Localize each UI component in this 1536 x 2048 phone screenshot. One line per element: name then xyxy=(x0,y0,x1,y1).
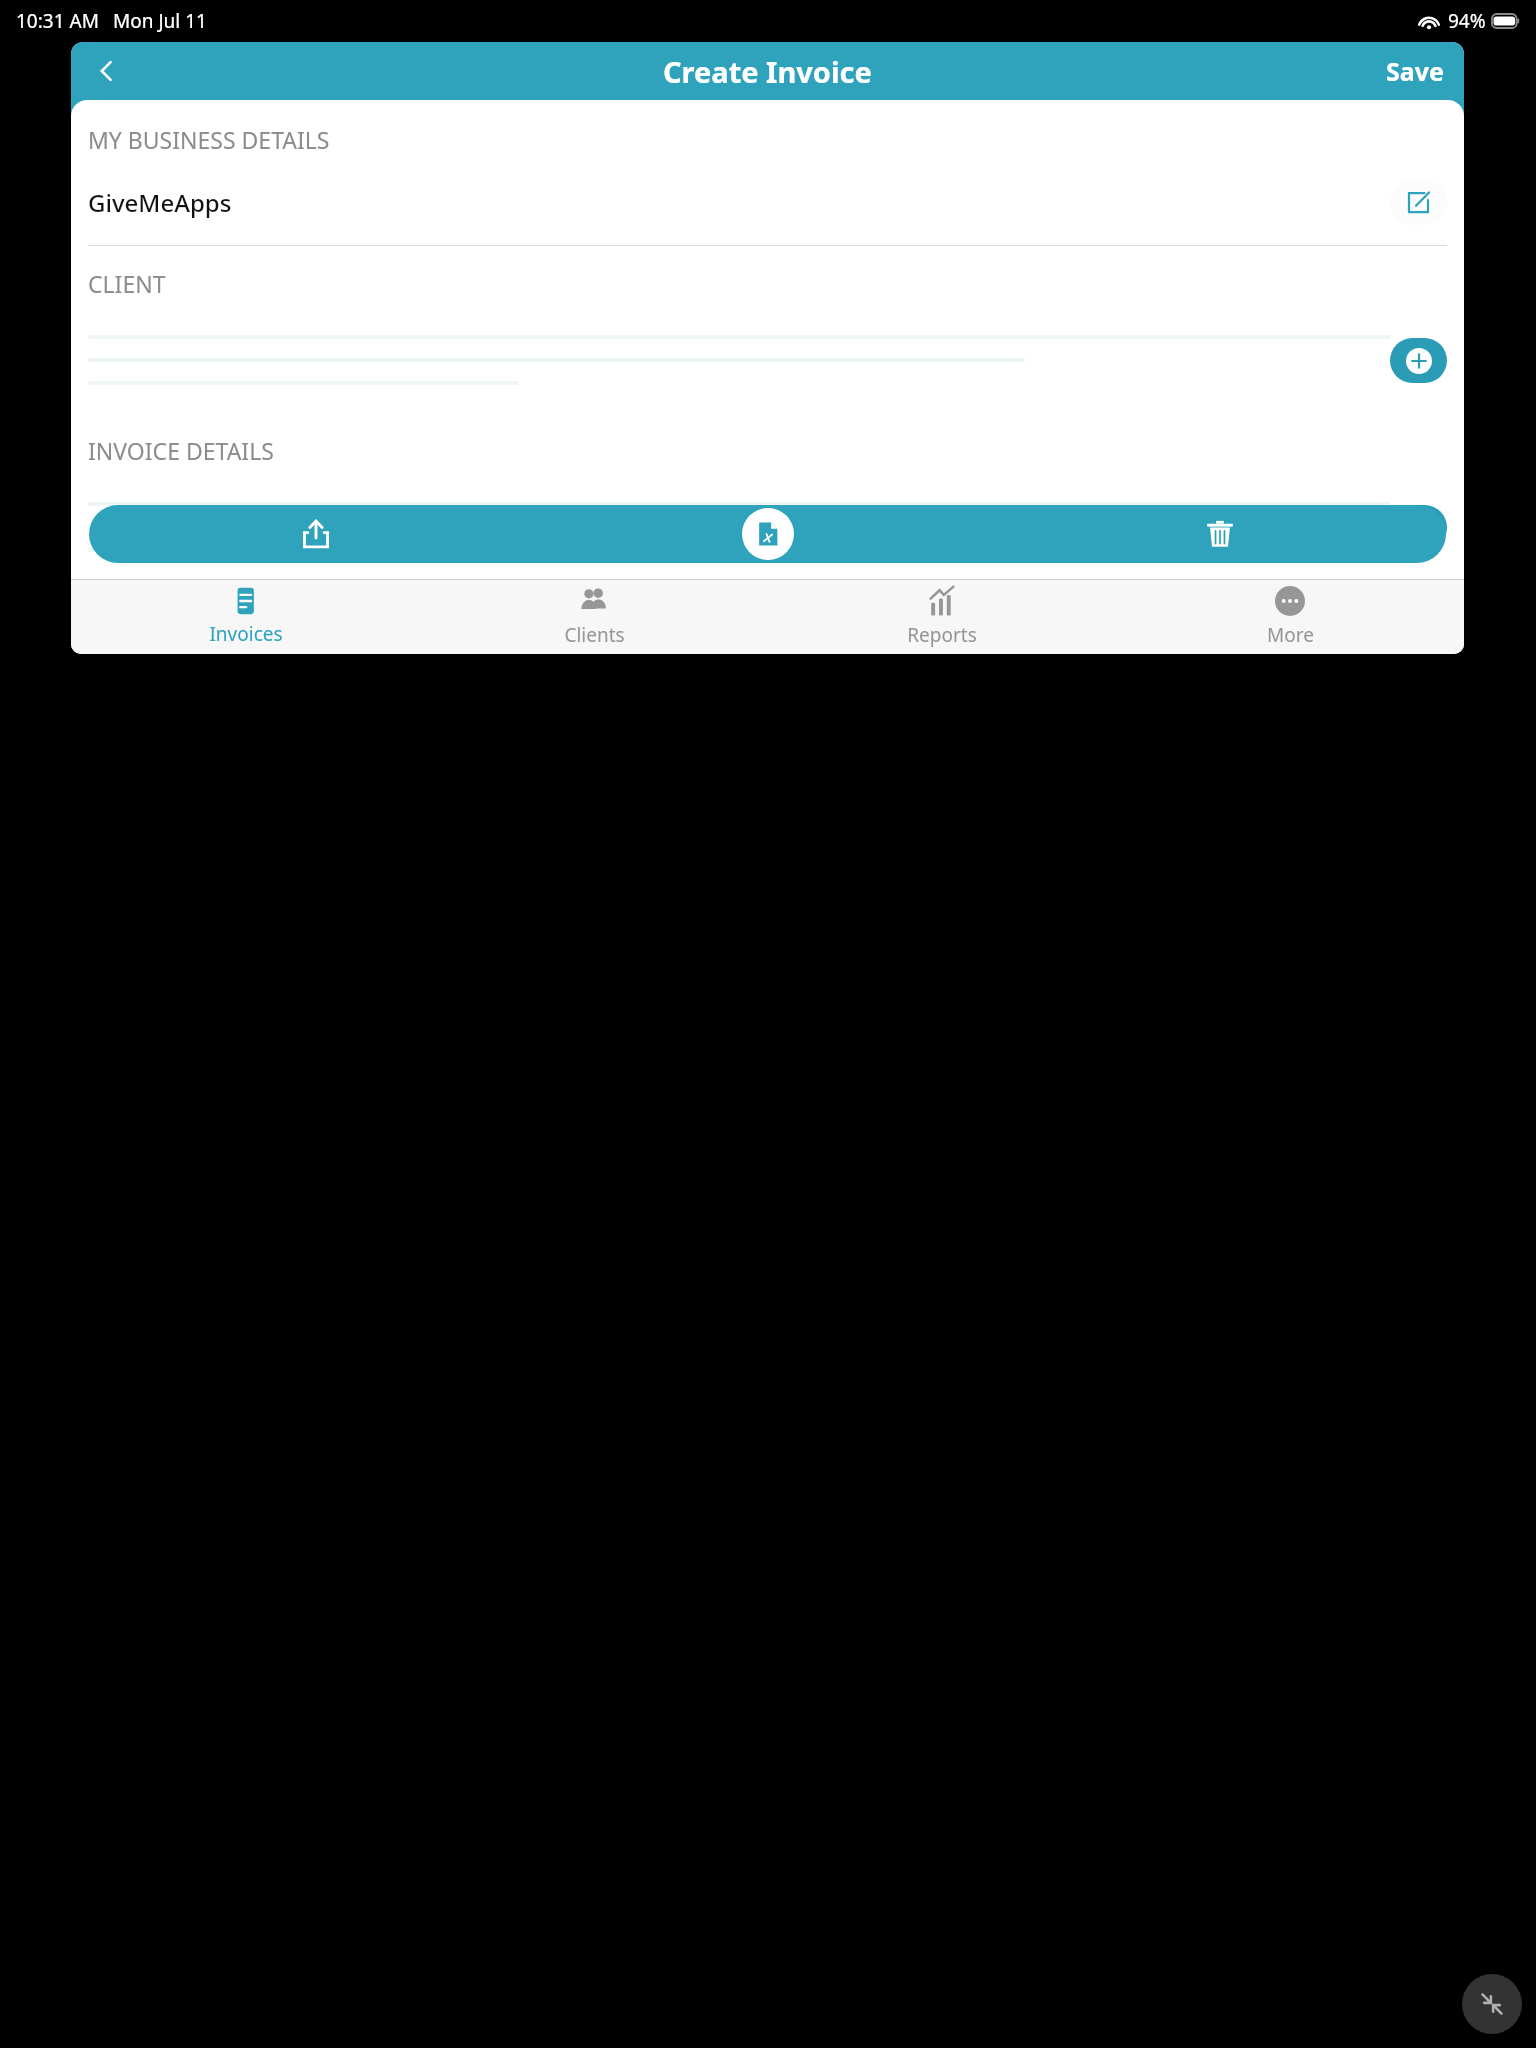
staticText: Invoices xyxy=(209,621,283,647)
staticText: 94% xyxy=(1448,8,1486,34)
staticText: Create Invoice xyxy=(663,52,872,91)
staticText: Mon Jul 11 xyxy=(113,8,207,34)
button[interactable]: More xyxy=(1116,580,1464,654)
button[interactable]: Invoices xyxy=(71,580,420,654)
button[interactable]: Export PDF xyxy=(542,505,994,563)
staticText: MY BUSINESS DETAILS xyxy=(88,124,330,155)
button[interactable]: Share xyxy=(89,505,542,563)
staticText: Reports xyxy=(907,622,977,648)
staticText: Clients xyxy=(564,622,625,648)
button[interactable]: Back xyxy=(85,49,129,93)
staticText: INVOICE DETAILS xyxy=(88,435,274,466)
button[interactable]: Clients xyxy=(420,580,768,654)
button[interactable]: Reports xyxy=(768,580,1116,654)
staticText: More xyxy=(1267,622,1314,648)
staticText: Save xyxy=(1386,54,1444,88)
button[interactable]: Add xyxy=(1390,505,1447,550)
button[interactable]: Save xyxy=(1374,46,1464,96)
staticText: 10:31 AM xyxy=(16,8,99,34)
button[interactable]: Add xyxy=(1390,338,1447,383)
staticText: CLIENT xyxy=(88,268,166,299)
button[interactable]: Shrink window xyxy=(1462,1974,1522,2034)
staticText: GiveMeApps xyxy=(88,186,232,219)
button[interactable]: Edit xyxy=(1390,180,1447,225)
button[interactable]: Delete xyxy=(994,505,1446,563)
